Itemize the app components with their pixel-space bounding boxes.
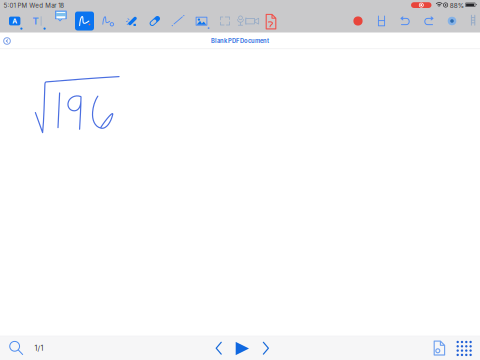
staticText: 5:01 PM	[4, 2, 28, 9]
button[interactable]: More	[441, 10, 463, 31]
button[interactable]: Record audio	[229, 10, 251, 31]
button[interactable]: Shape	[167, 10, 189, 31]
button[interactable]: Previous page	[212, 339, 228, 357]
button[interactable]: Marker	[120, 10, 142, 31]
button[interactable]: Next page	[258, 339, 274, 357]
button[interactable]: Highlighter	[97, 10, 119, 31]
staticText: 1/1	[35, 344, 44, 352]
button[interactable]: Document	[260, 10, 282, 31]
button[interactable]: Comment	[50, 8, 72, 29]
staticText: Blank PDF Document	[211, 37, 269, 44]
button[interactable]: Play	[234, 341, 252, 359]
button[interactable]: Markup style	[4, 10, 26, 31]
staticText: 88%	[450, 2, 464, 9]
button[interactable]: Bookmark	[370, 10, 392, 31]
button[interactable]: Redo	[417, 10, 439, 31]
button[interactable]: Eraser	[144, 10, 166, 31]
staticText: A	[12, 17, 17, 25]
button[interactable]: Insert image	[190, 10, 212, 31]
staticText: T	[32, 15, 38, 27]
staticText: Wed Mar 18	[29, 2, 64, 9]
button[interactable]: Record	[347, 10, 369, 31]
button[interactable]: Page thumbnails	[431, 339, 449, 359]
button[interactable]: Back	[0, 34, 14, 48]
button[interactable]: Select	[214, 10, 236, 31]
button[interactable]: Pen	[73, 10, 95, 31]
button[interactable]: View options	[462, 10, 480, 31]
button[interactable]: Search	[7, 339, 27, 359]
button[interactable]: Text	[26, 10, 48, 31]
button[interactable]: Undo	[394, 10, 416, 31]
button[interactable]: Page grid	[455, 340, 473, 358]
button[interactable]: Record video	[241, 10, 263, 31]
